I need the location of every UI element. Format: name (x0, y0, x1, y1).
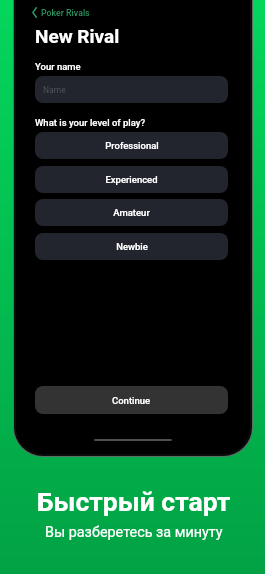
button[interactable]: Name (35, 76, 228, 103)
staticText: Amateur (113, 207, 150, 218)
button[interactable]: Professional (35, 132, 228, 159)
button[interactable]: Amateur (35, 199, 228, 226)
staticText: Professional (105, 140, 159, 151)
staticText: Continue (112, 395, 151, 406)
button[interactable]: Continue (35, 386, 228, 414)
staticText: What is your level of play? (35, 117, 146, 128)
button[interactable]: Experienced (35, 166, 228, 193)
staticText: Быстрый старт (37, 486, 231, 517)
staticText: Your name (35, 61, 81, 72)
staticText: Вы разберетесь за минуту (45, 524, 223, 541)
button[interactable]: Newbie (35, 233, 228, 260)
staticText: Name (43, 85, 66, 95)
staticText: Poker Rivals (41, 8, 90, 18)
button[interactable]: Back to Poker Rivals (30, 5, 92, 20)
staticText: Newbie (116, 241, 148, 252)
staticText: New Rival (35, 25, 120, 47)
staticText: Experienced (105, 174, 158, 185)
